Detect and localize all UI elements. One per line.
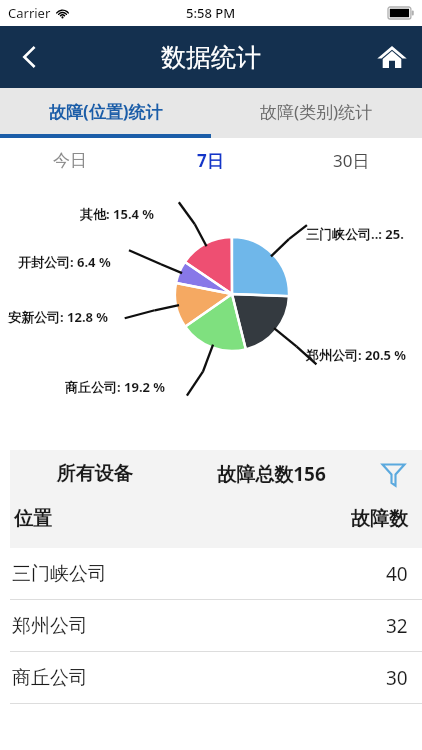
- staticText: 商丘公司: 19.2 %: [65, 378, 166, 396]
- staticText: 7日: [197, 149, 224, 172]
- button[interactable]: 所有设备: [10, 462, 179, 486]
- staticText: 32: [386, 613, 408, 639]
- button[interactable]: Home: [362, 26, 422, 88]
- button[interactable]: 30日: [281, 138, 422, 182]
- button[interactable]: Filter: [364, 450, 422, 498]
- staticText: 故障数: [351, 507, 408, 531]
- staticText: 商丘公司: [12, 666, 88, 690]
- staticText: 三门峡公司: [12, 562, 107, 586]
- staticText: 30日: [333, 149, 370, 172]
- staticText: 5:58 PM: [186, 4, 236, 22]
- staticText: 故障总数156: [179, 461, 364, 487]
- button[interactable]: 三门峡公司: [0, 548, 422, 600]
- staticText: 位置: [14, 507, 52, 531]
- button[interactable]: 郑州公司: [0, 600, 422, 652]
- staticText: 40: [386, 561, 408, 587]
- staticText: 安新公司: 12.8 %: [8, 308, 109, 326]
- staticText: 数据统计: [161, 42, 261, 73]
- staticText: 三门峡公司..: 25.: [306, 225, 404, 243]
- staticText: Carrier: [8, 4, 51, 22]
- staticText: 故障(类别)统计: [260, 100, 373, 123]
- staticText: 郑州公司: [12, 614, 88, 638]
- button[interactable]: 商丘公司: [0, 652, 422, 704]
- button[interactable]: Back: [0, 26, 58, 88]
- staticText: 故障(位置)统计: [49, 100, 163, 123]
- staticText: 30: [386, 665, 408, 691]
- button[interactable]: 故障(类别)统计: [211, 88, 422, 134]
- button[interactable]: 7日: [140, 138, 281, 182]
- staticText: 郑州公司: 20.5 %: [306, 346, 407, 364]
- button[interactable]: 故障(位置)统计: [0, 88, 211, 134]
- button[interactable]: 今日: [0, 138, 140, 182]
- staticText: 其他: 15.4 %: [80, 205, 155, 223]
- staticText: 今日: [53, 150, 87, 171]
- staticText: 开封公司: 6.4 %: [18, 253, 111, 271]
